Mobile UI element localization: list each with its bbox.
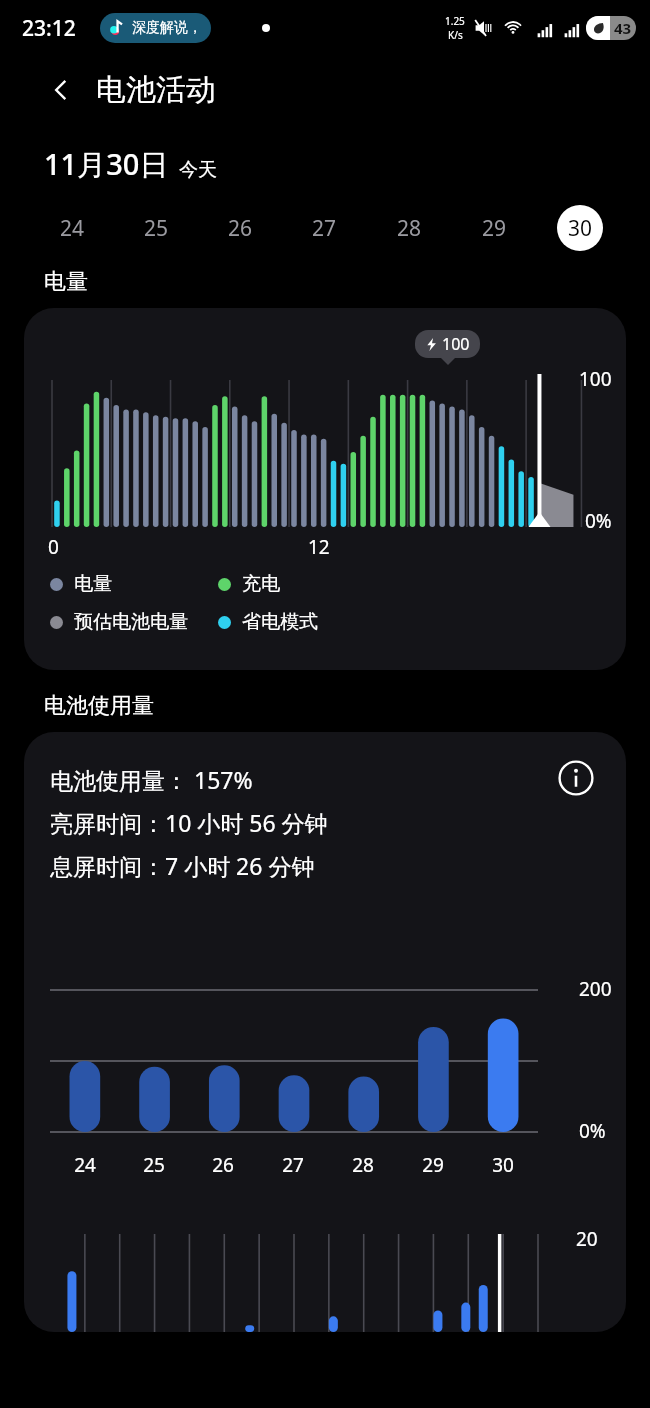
- staticText: 43: [614, 18, 632, 38]
- staticText: 29: [482, 214, 507, 243]
- staticText: 28: [397, 214, 422, 243]
- staticText: 0%: [579, 1118, 606, 1144]
- staticText: 200: [579, 976, 612, 1002]
- staticText: 26: [228, 214, 253, 243]
- button[interactable]: 25: [114, 204, 198, 252]
- staticText: 100: [579, 366, 612, 392]
- button[interactable]: 30: [537, 204, 622, 252]
- staticText: 30: [492, 1152, 514, 1178]
- staticText: 20: [576, 1226, 598, 1252]
- staticText: 26: [212, 1152, 234, 1178]
- button[interactable]: 27: [282, 204, 367, 252]
- staticText: 充电: [242, 572, 280, 596]
- staticText: 25: [143, 1152, 165, 1178]
- staticText: 24: [60, 214, 85, 243]
- button[interactable]: 26: [198, 204, 282, 252]
- staticText: 11月30日: [44, 144, 169, 184]
- staticText: 电量: [74, 572, 112, 596]
- staticText: 今天: [179, 158, 217, 182]
- staticText: 省电模式: [242, 610, 318, 634]
- staticText: 29: [422, 1152, 444, 1178]
- staticText: 预估电池电量: [74, 610, 188, 634]
- staticText: 亮屏时间：10 小时 56 分钟: [50, 807, 328, 838]
- staticText: K/s: [448, 28, 463, 42]
- staticText: 24: [74, 1152, 96, 1178]
- staticText: 0: [48, 534, 59, 560]
- staticText: 电池活动: [96, 71, 216, 109]
- staticText: 0%: [585, 508, 612, 534]
- staticText: 27: [312, 214, 337, 243]
- staticText: 深度解说，: [132, 19, 202, 37]
- staticText: 28: [352, 1152, 374, 1178]
- staticText: 25: [144, 214, 169, 243]
- button[interactable]: 24: [30, 204, 114, 252]
- staticText: 23:12: [22, 14, 76, 43]
- staticText: 1.25: [445, 14, 465, 28]
- staticText: 12: [308, 534, 330, 560]
- staticText: 100: [442, 333, 470, 355]
- button[interactable]: 28: [367, 204, 452, 252]
- button[interactable]: 信息: [556, 758, 596, 798]
- button[interactable]: 100: [24, 308, 626, 670]
- button[interactable]: 29: [452, 204, 537, 252]
- staticText: 电池使用量: [44, 692, 154, 720]
- staticText: 息屏时间：7 小时 26 分钟: [50, 850, 315, 881]
- staticText: 电池使用量： 157%: [50, 764, 253, 795]
- staticText: 电量: [44, 268, 88, 296]
- button[interactable]: 电池使用量： 157%: [24, 732, 626, 1332]
- staticText: 30: [568, 214, 593, 243]
- button[interactable]: 返回: [40, 69, 82, 111]
- staticText: 27: [282, 1152, 304, 1178]
